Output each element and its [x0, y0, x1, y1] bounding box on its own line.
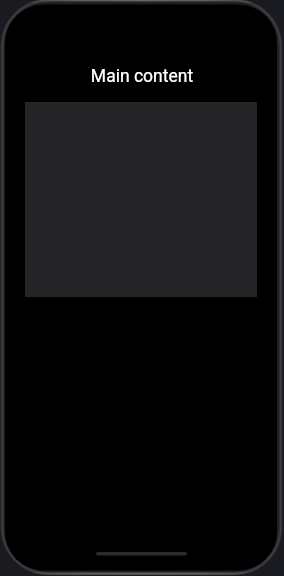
button[interactable]: Home: [96, 551, 187, 557]
staticText: Main content: [0, 66, 284, 87]
